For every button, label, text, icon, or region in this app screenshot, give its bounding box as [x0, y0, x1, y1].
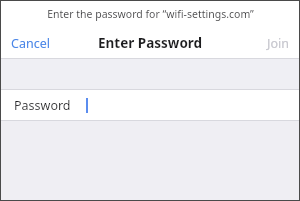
- button[interactable]: Cancel: [4, 30, 57, 57]
- staticText: Enter Password: [98, 34, 203, 52]
- staticText: Join: [267, 35, 289, 52]
- button[interactable]: Password: [0, 90, 300, 120]
- staticText: Cancel: [11, 35, 50, 52]
- staticText: Enter the password for “wifi-settings.co…: [47, 7, 254, 21]
- button[interactable]: Join: [260, 30, 296, 57]
- staticText: Password: [14, 97, 71, 114]
